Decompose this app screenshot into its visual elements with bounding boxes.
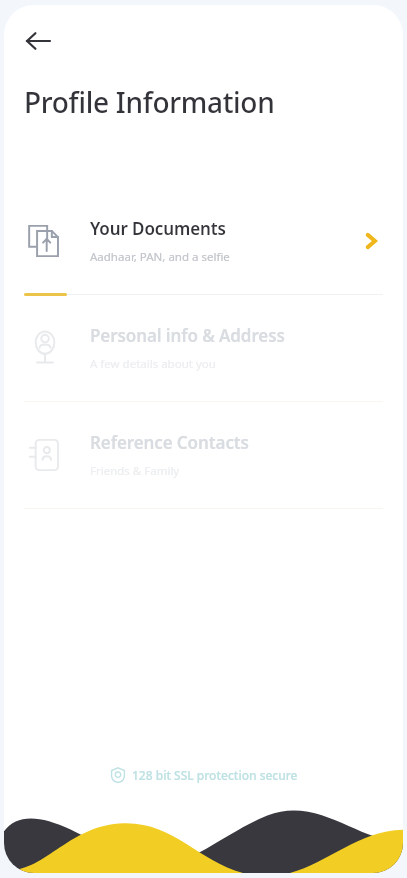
- staticText: Personal info & Address: [90, 324, 285, 347]
- staticText: Aadhaar, PAN, and a selfie: [90, 249, 230, 265]
- staticText: Profile Information: [24, 83, 275, 121]
- button[interactable]: Reference Contacts: [4, 403, 403, 507]
- button[interactable]: Your Documents: [4, 189, 403, 293]
- button[interactable]: Personal info & Address: [4, 296, 403, 400]
- staticText: 128 bit SSL protection secure: [132, 767, 298, 783]
- staticText: A few details about you: [90, 356, 216, 372]
- staticText: Your Documents: [90, 217, 226, 240]
- button[interactable]: Back: [14, 17, 62, 65]
- staticText: Friends & Family: [90, 463, 180, 479]
- staticText: Reference Contacts: [90, 431, 249, 454]
